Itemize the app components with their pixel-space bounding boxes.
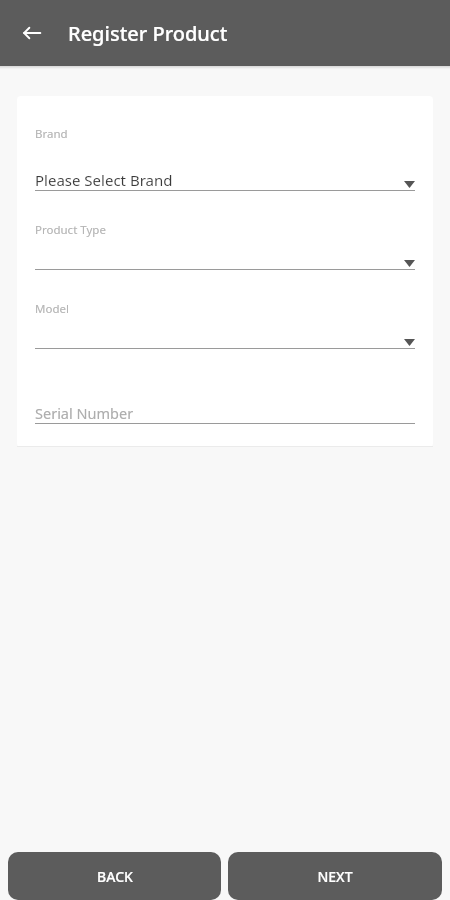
button[interactable]: Back [10, 11, 54, 55]
staticText: BACK [97, 867, 133, 886]
staticText: Brand [35, 126, 68, 142]
button[interactable]: Serial Number [35, 401, 415, 423]
button[interactable]: NEXT [228, 852, 442, 900]
staticText: Product Type [35, 222, 106, 238]
staticText: Serial Number [35, 403, 134, 423]
staticText: Please Select Brand [35, 170, 173, 190]
button[interactable]: BACK [8, 852, 221, 900]
staticText: Model [35, 301, 69, 317]
staticText: Register Product [68, 20, 228, 47]
staticText: NEXT [317, 867, 353, 886]
